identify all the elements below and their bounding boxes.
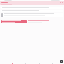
button[interactable] [1, 20, 63, 23]
button[interactable] [1, 7, 63, 9]
button[interactable] [1, 13, 63, 17]
button[interactable]: Library [38, 62, 40, 64]
button[interactable]: Home [11, 62, 13, 64]
button[interactable]: Create new [60, 60, 63, 63]
button[interactable]: Browse [24, 62, 26, 64]
button[interactable] [1, 10, 63, 12]
button[interactable]: Profile [51, 62, 53, 64]
button[interactable]: Search [0, 1, 64, 5]
